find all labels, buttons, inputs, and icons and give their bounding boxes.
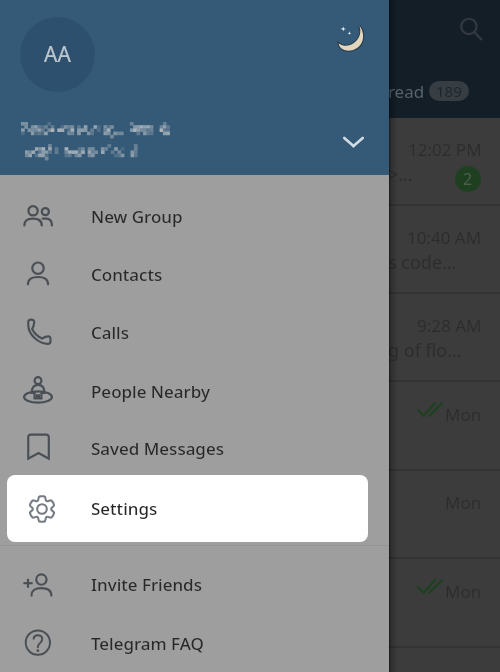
button[interactable]: People Nearby: [0, 362, 389, 420]
button[interactable]: Mon: [0, 383, 500, 471]
button[interactable]: Night mode: [327, 13, 375, 61]
staticText: 9:28 AM: [417, 314, 482, 337]
button[interactable]: AA: [20, 17, 95, 92]
button[interactable]: Calls: [0, 303, 389, 361]
staticText: 12:02 PM: [408, 138, 482, 161]
staticText: Settings: [91, 497, 158, 520]
staticText: g of flo…: [388, 338, 462, 363]
staticText: 2: [463, 168, 473, 190]
staticText: Calls: [91, 321, 129, 344]
button[interactable]: Expand accounts: [331, 119, 376, 164]
button[interactable]: Telegram FAQ: [0, 614, 389, 672]
staticText: 189: [436, 81, 462, 101]
staticText: 10:40 AM: [407, 226, 482, 249]
staticText: Mon: [445, 403, 482, 426]
button[interactable]: 9:28 AM: [0, 294, 500, 382]
button[interactable]: Mon: [0, 560, 500, 648]
button[interactable]: 10:40 AM: [0, 206, 500, 294]
button[interactable]: Mon: [0, 648, 500, 672]
button[interactable]: Settings: [7, 475, 368, 542]
button[interactable]: 12:02 PM: [0, 118, 500, 206]
staticText: Invite Friends: [91, 573, 202, 596]
staticText: AA: [44, 40, 71, 69]
button[interactable]: Mon: [0, 471, 500, 559]
button[interactable]: Contacts: [0, 245, 389, 303]
staticText: >…: [388, 162, 413, 187]
button[interactable]: Search: [449, 7, 493, 51]
staticText: People Nearby: [91, 380, 210, 403]
button[interactable]: Invite Friends: [0, 555, 389, 613]
staticText: Mon: [445, 491, 482, 514]
staticText: Unread: [365, 80, 425, 103]
staticText: Mon: [445, 580, 482, 603]
button[interactable]: Saved Messages: [0, 419, 389, 477]
staticText: Telegram FAQ: [91, 632, 204, 655]
staticText: Saved Messages: [91, 437, 224, 460]
button[interactable]: New Group: [0, 187, 389, 245]
staticText: New Group: [91, 205, 183, 228]
staticText: s code…: [388, 250, 457, 275]
staticText: Contacts: [91, 263, 163, 286]
